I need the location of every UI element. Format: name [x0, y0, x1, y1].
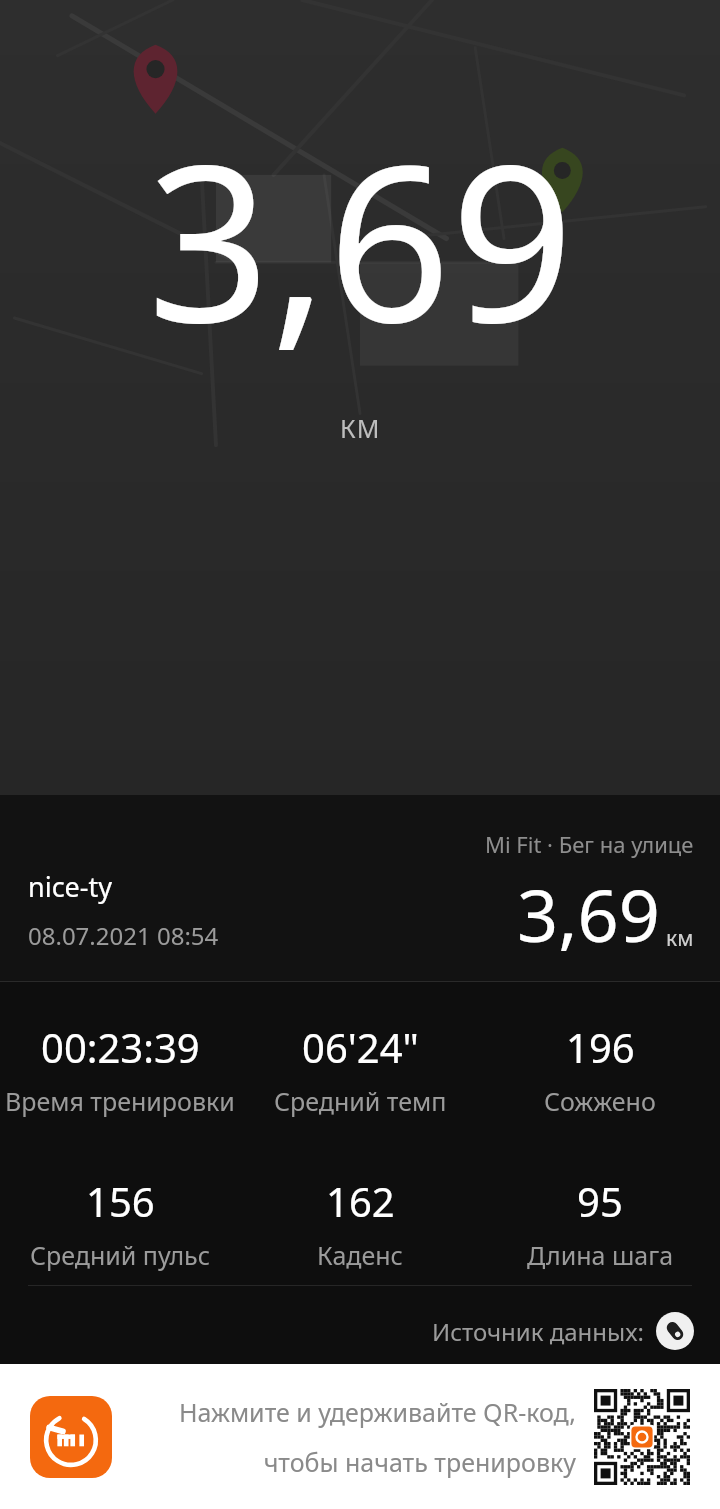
staticText: 196	[566, 1020, 635, 1074]
staticText: 95	[577, 1174, 623, 1228]
staticText: 06'24"	[302, 1020, 419, 1074]
staticText: 08.07.2021 08:54	[28, 919, 219, 952]
staticText: км	[666, 924, 694, 953]
button[interactable]: 162	[240, 1174, 480, 1272]
button[interactable]: 06'24"	[240, 1020, 480, 1118]
staticText: 156	[86, 1174, 155, 1228]
other: Источник данных	[656, 1312, 694, 1350]
button[interactable]: 95	[480, 1174, 720, 1272]
staticText: Нажмите и удерживайте QR-код,	[178, 1395, 576, 1429]
staticText: Средний пульс	[30, 1238, 211, 1272]
staticText: Сожжено	[544, 1084, 656, 1118]
staticText: Каденс	[317, 1238, 403, 1272]
staticText: Mi Fit · Бег на улице	[485, 829, 694, 859]
staticText: Время тренировки	[5, 1084, 235, 1118]
staticText: nice-ty	[28, 868, 113, 905]
staticText: Средний темп	[274, 1084, 447, 1118]
button[interactable]: 00:23:39	[0, 1020, 240, 1118]
button[interactable]: 196	[480, 1020, 720, 1118]
staticText: чтобы начать тренировку	[263, 1445, 576, 1479]
staticText: Источник данных:	[432, 1315, 644, 1348]
button[interactable]: Источник данных:	[432, 1312, 694, 1350]
staticText: 3,69	[147, 92, 574, 385]
staticText: КМ	[340, 411, 381, 445]
button[interactable]: 156	[0, 1174, 240, 1272]
staticText: 162	[326, 1174, 395, 1228]
staticText: 3,69	[517, 865, 660, 963]
button[interactable]: Mi Fit	[30, 1396, 112, 1478]
button[interactable]: QR-код тренировки	[594, 1389, 690, 1485]
staticText: 00:23:39	[41, 1020, 200, 1074]
staticText: Длина шага	[527, 1238, 674, 1272]
